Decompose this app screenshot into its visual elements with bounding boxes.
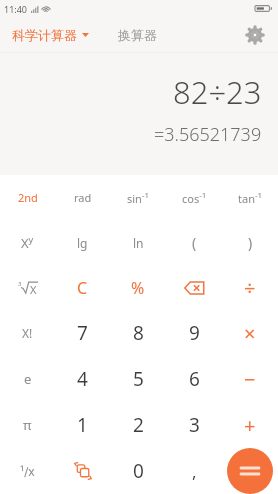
button[interactable]: +: [222, 402, 278, 448]
button[interactable]: 7: [55, 310, 110, 356]
staticText: (: [192, 233, 197, 252]
staticText: =3.56521739: [154, 122, 262, 147]
staticText: 2nd: [18, 190, 38, 205]
staticText: 0: [133, 458, 144, 484]
staticText: 3: [18, 280, 22, 288]
staticText: 科学计算器: [12, 27, 77, 43]
button[interactable]: (: [166, 220, 222, 265]
button[interactable]: 换算器: [118, 27, 157, 43]
staticText: %: [131, 277, 145, 299]
staticText: Xy: [21, 233, 34, 252]
button[interactable]: cos-1: [166, 175, 222, 220]
button[interactable]: Convert: [55, 448, 110, 494]
staticText: X: [30, 282, 37, 295]
staticText: 7: [77, 320, 88, 346]
staticText: 5: [133, 366, 144, 392]
button[interactable]: %: [110, 265, 166, 310]
button[interactable]: 8: [110, 310, 166, 356]
button[interactable]: 3: [166, 402, 222, 448]
staticText: +: [244, 412, 256, 439]
staticText: 11:40: [4, 3, 28, 15]
button[interactable]: 0: [110, 448, 166, 494]
button[interactable]: rad: [55, 175, 110, 220]
staticText: 9: [189, 320, 200, 346]
button[interactable]: 6: [166, 356, 222, 402]
button[interactable]: Xy: [0, 220, 55, 265]
button[interactable]: 2nd: [0, 175, 55, 220]
staticText: sin-1: [127, 190, 149, 206]
staticText: ): [248, 233, 253, 252]
button[interactable]: 5: [110, 356, 166, 402]
staticText: rad: [74, 190, 92, 205]
button[interactable]: 2: [110, 402, 166, 448]
staticText: π: [23, 416, 32, 434]
button[interactable]: Backspace: [166, 265, 222, 310]
button[interactable]: Settings: [241, 21, 269, 49]
staticText: C: [77, 277, 88, 299]
button[interactable]: ,: [166, 448, 222, 494]
staticText: ln: [133, 235, 144, 251]
button[interactable]: tan-1: [222, 175, 278, 220]
button[interactable]: X!: [0, 310, 55, 356]
staticText: cos-1: [182, 190, 207, 206]
button[interactable]: 1: [55, 402, 110, 448]
staticText: X!: [22, 325, 33, 341]
staticText: ÷: [244, 274, 256, 301]
staticText: tan-1: [238, 190, 263, 206]
staticText: 1: [77, 412, 88, 438]
button[interactable]: 9: [166, 310, 222, 356]
staticText: ,: [192, 460, 197, 483]
button[interactable]: π: [0, 402, 55, 448]
button[interactable]: ×: [222, 310, 278, 356]
staticText: e: [24, 370, 32, 388]
button[interactable]: Cube root: [0, 265, 55, 310]
staticText: ¹∕x: [20, 463, 35, 479]
staticText: −: [244, 366, 256, 393]
button[interactable]: 4: [55, 356, 110, 402]
staticText: 4: [77, 366, 88, 392]
staticText: ×: [244, 320, 256, 347]
button[interactable]: ¹∕x: [0, 448, 55, 494]
staticText: 82÷23: [173, 71, 262, 113]
staticText: lg: [77, 235, 88, 251]
staticText: 3: [189, 412, 200, 438]
staticText: 2: [133, 412, 144, 438]
staticText: 换算器: [118, 27, 157, 43]
button[interactable]: lg: [55, 220, 110, 265]
button[interactable]: C: [55, 265, 110, 310]
button[interactable]: ): [222, 220, 278, 265]
staticText: 8: [133, 320, 144, 346]
staticText: 6: [189, 366, 200, 392]
button[interactable]: ln: [110, 220, 166, 265]
button[interactable]: ÷: [222, 265, 278, 310]
button[interactable]: Equals: [227, 448, 273, 494]
button[interactable]: 科学计算器: [12, 27, 89, 43]
button[interactable]: −: [222, 356, 278, 402]
button[interactable]: e: [0, 356, 55, 402]
button[interactable]: sin-1: [110, 175, 166, 220]
